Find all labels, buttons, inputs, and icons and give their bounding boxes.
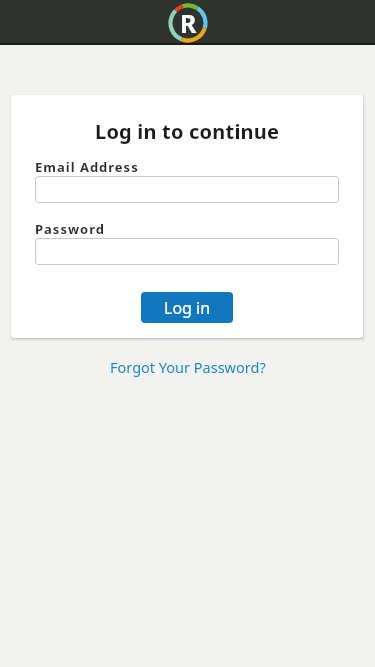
button[interactable] xyxy=(35,238,339,265)
button[interactable] xyxy=(35,176,339,203)
staticText: Log in to continue xyxy=(95,118,280,145)
staticText: R xyxy=(180,6,197,40)
staticText: Password xyxy=(35,220,105,238)
button[interactable]: Log in xyxy=(141,292,233,323)
staticText: Log in xyxy=(164,297,211,319)
button[interactable]: Forgot Your Password? xyxy=(110,357,266,377)
staticText: Email Address xyxy=(35,158,139,176)
